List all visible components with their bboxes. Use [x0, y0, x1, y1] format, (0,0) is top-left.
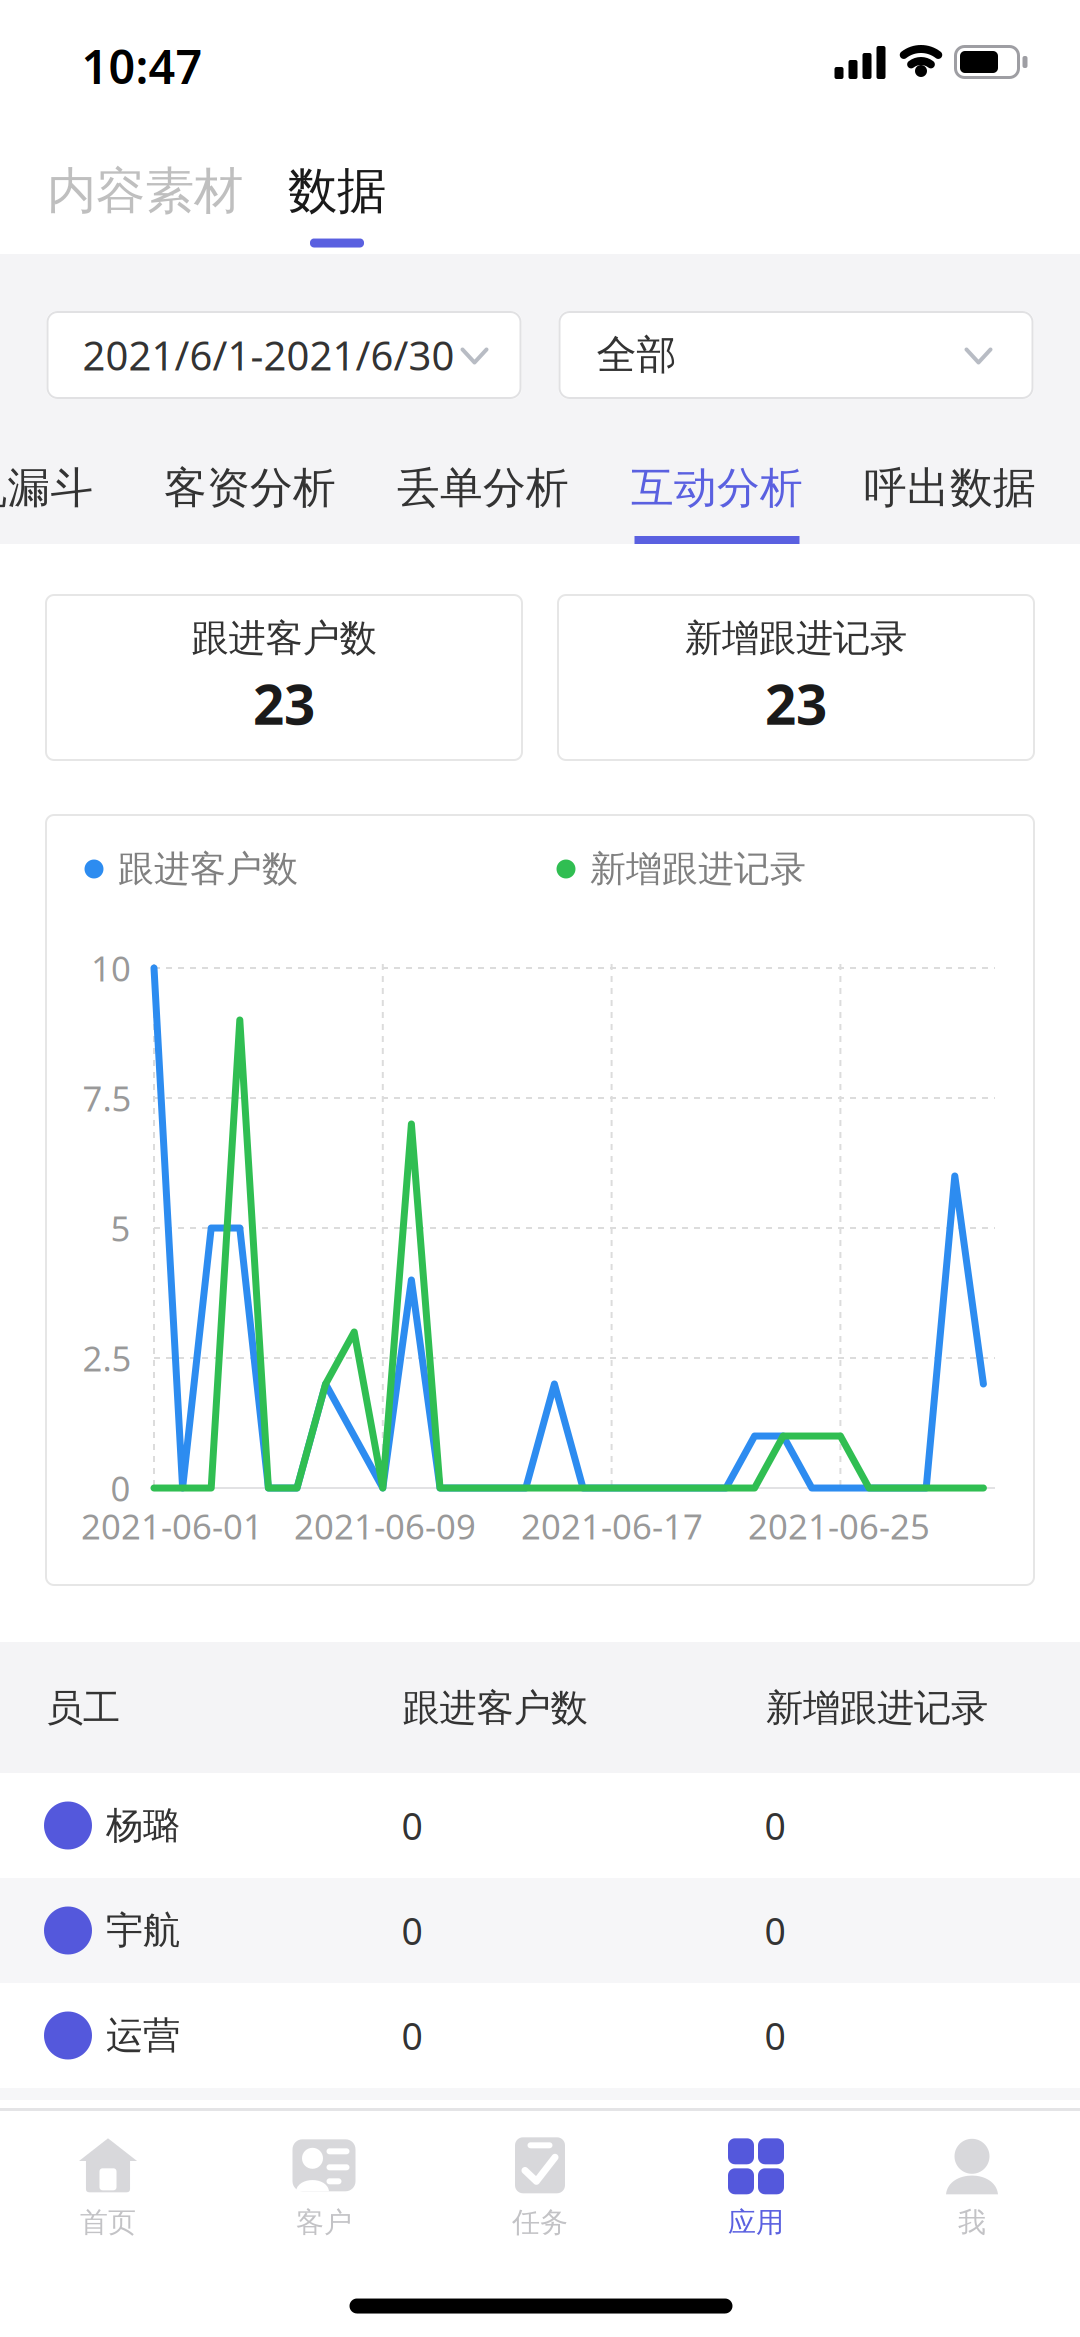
staticText: 5	[110, 1205, 130, 1251]
staticText: 2021-06-25	[748, 1503, 930, 1549]
staticText: 互动分析	[631, 462, 803, 514]
staticText: 运营	[106, 2013, 180, 2058]
button[interactable]: 首页	[0, 2123, 216, 2253]
button[interactable]: 机漏斗	[0, 462, 93, 514]
button[interactable]: 丢单分析	[397, 462, 569, 514]
staticText: 呼出数据	[864, 462, 1036, 514]
button[interactable]: 内容素材	[47, 161, 243, 221]
button[interactable]: 互动分析	[631, 462, 803, 514]
staticText: 0	[764, 1801, 785, 1850]
button[interactable]: 任务	[432, 2123, 648, 2253]
staticText: 客户	[296, 2205, 352, 2240]
staticText: 0	[764, 1906, 785, 1955]
button[interactable]: 呼出数据	[864, 462, 1036, 514]
staticText: 23	[253, 667, 315, 740]
staticText: 宇航	[106, 1908, 180, 1953]
button[interactable]: 全部	[558, 311, 1033, 399]
staticText: 杨璐	[106, 1803, 180, 1848]
staticText: 任务	[512, 2205, 568, 2240]
staticText: 新增跟进记录	[766, 1685, 988, 1731]
button[interactable]: 我	[864, 2123, 1080, 2253]
staticText: 新增跟进记录	[685, 615, 907, 661]
staticText: 客资分析	[164, 462, 336, 514]
staticText: 2021-06-17	[521, 1503, 703, 1549]
staticText: 跟进客户数	[402, 1685, 587, 1731]
staticText: 10	[91, 945, 131, 991]
staticText: 全部	[596, 330, 676, 379]
staticText: 7.5	[82, 1075, 131, 1121]
staticText: 丢单分析	[397, 462, 569, 514]
staticText: 跟进客户数	[118, 847, 298, 891]
staticText: 10:47	[81, 35, 202, 97]
staticText: 数据	[288, 161, 386, 221]
staticText: 0	[401, 1906, 422, 1955]
staticText: 0	[110, 1465, 130, 1511]
staticText: 0	[764, 2011, 785, 2060]
staticText: 应用	[728, 2205, 784, 2240]
staticText: 2.5	[82, 1335, 131, 1381]
staticText: 首页	[80, 2205, 136, 2240]
staticText: 新增跟进记录	[590, 847, 806, 891]
staticText: 机漏斗	[0, 462, 93, 514]
staticText: 内容素材	[47, 161, 243, 221]
staticText: 员工	[46, 1685, 120, 1731]
button[interactable]: 应用	[648, 2123, 864, 2253]
button[interactable]: 客户	[216, 2123, 432, 2253]
staticText: 我	[958, 2205, 986, 2240]
staticText: 2021/6/1-2021/6/30	[82, 328, 454, 381]
staticText: 0	[401, 2011, 422, 2060]
staticText: 23	[765, 667, 827, 740]
staticText: 跟进客户数	[191, 615, 376, 661]
staticText: 2021-06-01	[81, 1503, 263, 1549]
button[interactable]: 数据	[288, 161, 386, 221]
button[interactable]: 客资分析	[164, 462, 336, 514]
button[interactable]: 2021/6/1-2021/6/30	[46, 311, 521, 399]
staticText: 2021-06-09	[294, 1503, 476, 1549]
staticText: 0	[401, 1801, 422, 1850]
